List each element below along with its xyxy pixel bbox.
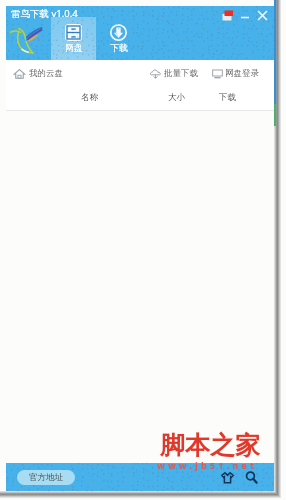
staticText: 雷鸟下载 v1.0.4 bbox=[11, 7, 78, 20]
button[interactable]: Close bbox=[253, 6, 272, 25]
staticText: www.jb51.net bbox=[157, 459, 258, 471]
staticText: 脚本之家 bbox=[160, 430, 260, 461]
staticText: 网盘登录 bbox=[225, 68, 259, 79]
staticText: 下载 bbox=[110, 42, 128, 53]
button[interactable]: Minimize bbox=[236, 7, 253, 24]
staticText: 批量下载 bbox=[164, 68, 198, 79]
button[interactable]: 下载 bbox=[96, 17, 141, 60]
button[interactable]: 官方地址 bbox=[17, 470, 75, 485]
staticText: 网盘 bbox=[65, 42, 83, 53]
button[interactable]: Skin bbox=[218, 468, 236, 486]
staticText: 官方地址 bbox=[29, 472, 63, 483]
button[interactable]: 批量下载 bbox=[148, 66, 200, 81]
button[interactable]: 网盘登录 bbox=[210, 66, 261, 81]
staticText: 大小 bbox=[168, 92, 185, 103]
button[interactable]: 我的云盘 bbox=[11, 66, 66, 81]
staticText: 下载 bbox=[219, 92, 236, 103]
staticText: 我的云盘 bbox=[29, 68, 63, 79]
button[interactable]: Search bbox=[242, 468, 260, 486]
button[interactable]: 网盘 bbox=[51, 17, 96, 60]
button[interactable]: Messages bbox=[219, 7, 236, 24]
staticText: 名称 bbox=[81, 92, 98, 103]
